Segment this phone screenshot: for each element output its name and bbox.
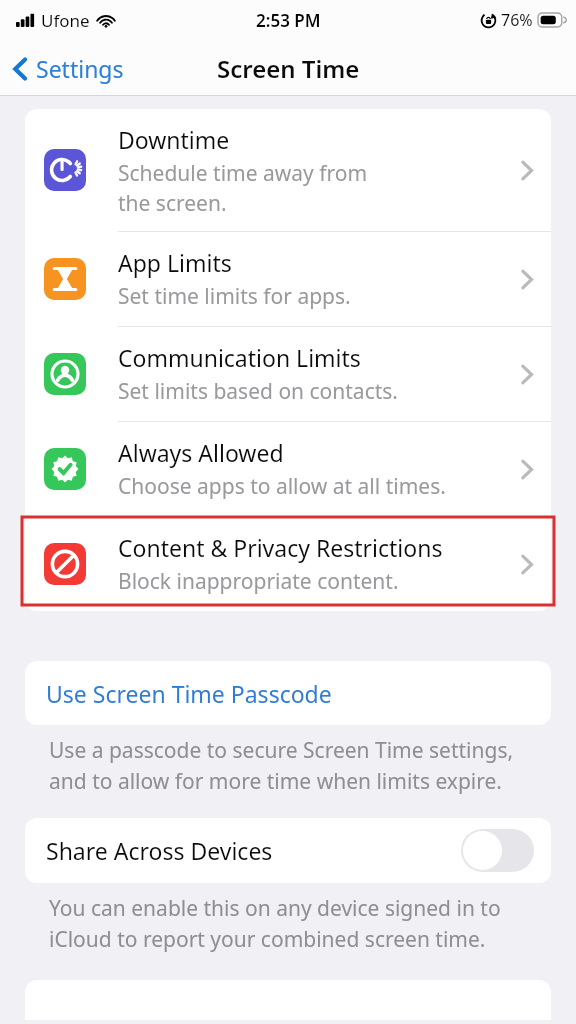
button[interactable]: App Limits xyxy=(25,232,551,326)
staticText: Block inappropriate content. xyxy=(118,567,399,596)
staticText: You can enable this on any device signed… xyxy=(49,894,501,953)
button[interactable]: Downtime xyxy=(25,109,551,231)
staticText: Use a passcode to secure Screen Time set… xyxy=(49,736,514,795)
button[interactable]: Share Across Devices xyxy=(25,818,551,883)
staticText: App Limits xyxy=(118,247,232,278)
button[interactable]: Communication Limits xyxy=(25,327,551,421)
staticText: Set limits based on contacts. xyxy=(118,377,398,406)
staticText: Downtime xyxy=(118,124,230,155)
staticText: Share Across Devices xyxy=(46,835,273,866)
staticText: Always Allowed xyxy=(118,437,284,468)
staticText: 76% xyxy=(501,9,533,31)
staticText: 2:53 PM xyxy=(256,9,321,32)
staticText: Set time limits for apps. xyxy=(118,282,351,311)
staticText: Schedule time away from the screen. xyxy=(118,159,368,217)
staticText: Screen Time xyxy=(217,52,360,85)
button[interactable]: Content & Privacy Restrictions xyxy=(25,517,551,611)
staticText: Ufone xyxy=(41,9,90,32)
staticText: Communication Limits xyxy=(118,342,361,373)
staticText: Settings xyxy=(36,53,124,84)
button[interactable]: Settings xyxy=(0,47,134,90)
button[interactable]: Always Allowed xyxy=(25,422,551,516)
staticText: Use Screen Time Passcode xyxy=(46,678,332,709)
staticText: Content & Privacy Restrictions xyxy=(118,532,443,563)
staticText: Choose apps to allow at all times. xyxy=(118,472,446,501)
other: Share Across Devices toggle xyxy=(461,829,534,872)
button[interactable]: Use Screen Time Passcode xyxy=(25,661,551,725)
